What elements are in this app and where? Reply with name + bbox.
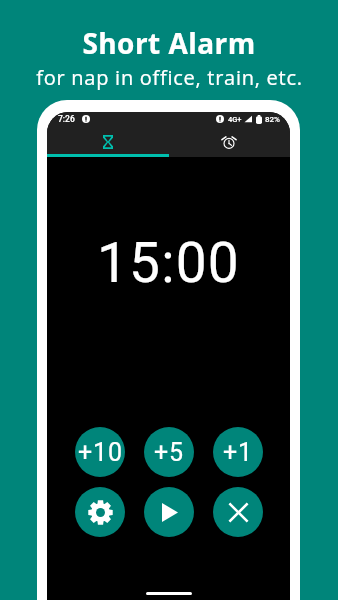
staticText: for nap in office, train, etc. (36, 64, 303, 91)
button[interactable]: Cancel (213, 487, 263, 537)
staticText: 82% (265, 115, 280, 124)
staticText: +10 (78, 438, 123, 467)
staticText: 15:00 (97, 231, 240, 295)
button[interactable]: +5 (144, 427, 194, 477)
button[interactable]: Timer tab (47, 129, 168, 157)
button[interactable]: Settings (75, 487, 125, 537)
staticText: +1 (223, 438, 254, 467)
button[interactable]: +10 (75, 427, 125, 477)
button[interactable]: Start (144, 487, 194, 537)
staticText: 4G+ (228, 115, 242, 124)
button[interactable]: Alarm tab (168, 129, 290, 157)
button[interactable]: +1 (213, 427, 263, 477)
staticText: 7:26 (58, 114, 75, 124)
staticText: Short Alarm (82, 24, 256, 62)
staticText: +5 (154, 438, 185, 467)
